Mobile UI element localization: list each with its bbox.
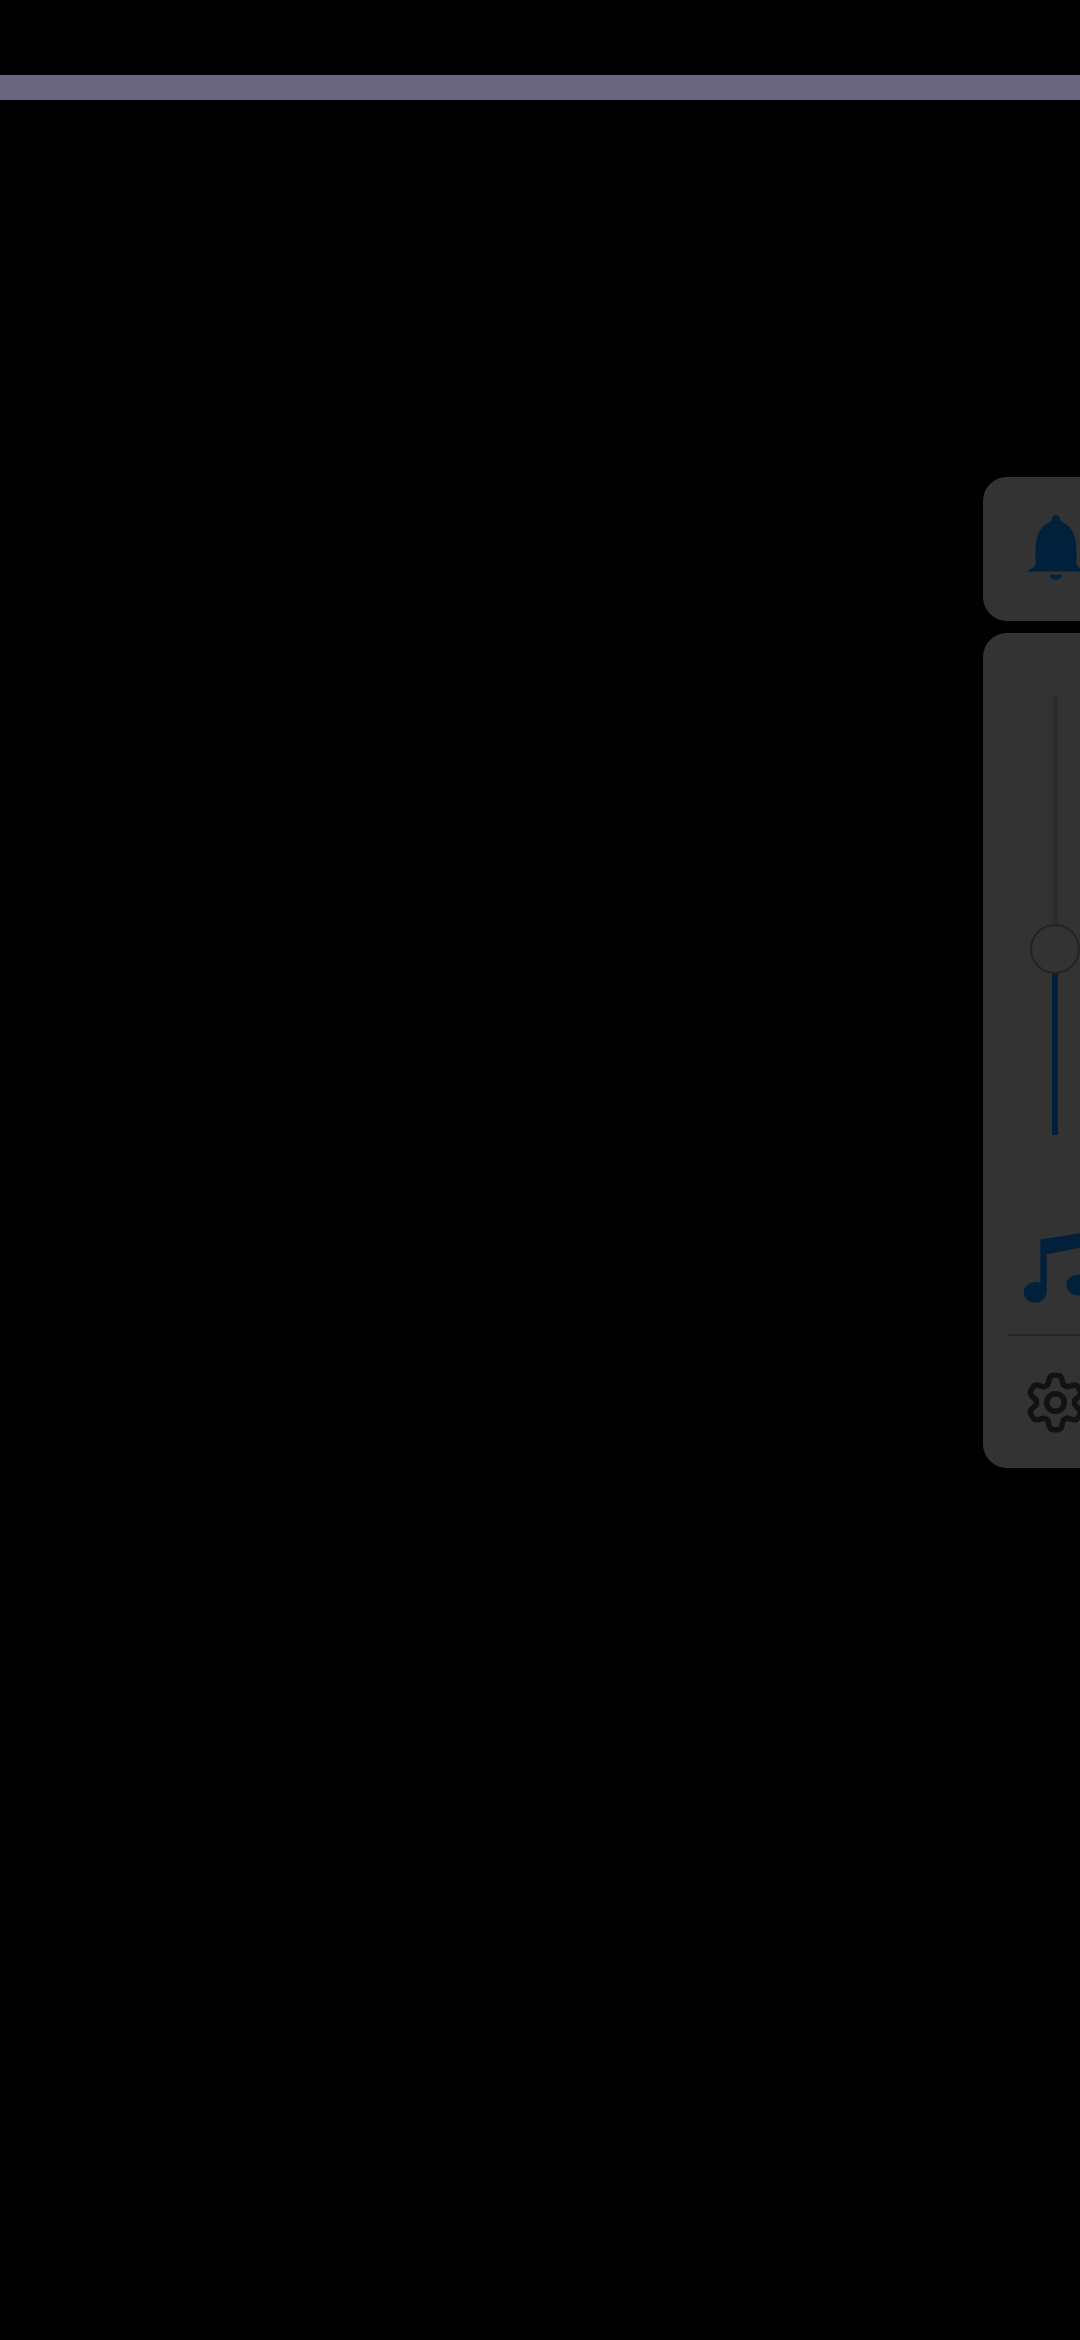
button[interactable]: Sound settings (983, 1336, 1080, 1468)
button[interactable]: Media volume (983, 633, 1080, 1333)
button[interactable]: Ringer mode (983, 477, 1080, 621)
